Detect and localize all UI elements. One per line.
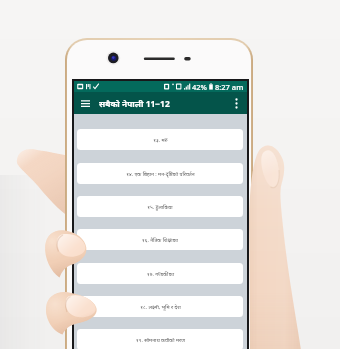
- button[interactable]: १८. लक्ष्मी, भूमि र देश: [77, 296, 243, 317]
- button[interactable]: १३. मरु: [77, 129, 243, 150]
- staticText: 42%: [192, 82, 207, 92]
- staticText: १५. हुलाकिया: [147, 203, 173, 210]
- button[interactable]: More options: [228, 95, 245, 112]
- staticText: 8:27 am: [215, 82, 244, 92]
- staticText: सबैको नेपाली 11−12: [99, 98, 170, 109]
- staticText: १९. सोमनाथ कवीको मरण: [136, 336, 185, 343]
- button[interactable]: १७. गण्डकीका: [77, 263, 243, 284]
- staticText: १८. लक्ष्मी, भूमि र देश: [140, 303, 181, 310]
- staticText: १४. एक बिहान : मन-दृष्टिको परिवर्तन: [126, 170, 195, 177]
- button[interactable]: Open navigation menu: [76, 94, 94, 112]
- button[interactable]: १६. नैतिक शिक्षाका: [77, 229, 243, 250]
- staticText: १३. मरु: [153, 136, 168, 143]
- button[interactable]: १५. हुलाकिया: [77, 196, 243, 217]
- button[interactable]: १९. सोमनाथ कवीको मरण: [77, 329, 243, 349]
- staticText: १६. नैतिक शिक्षाका: [142, 236, 178, 243]
- staticText: १७. गण्डकीका: [147, 270, 174, 277]
- button[interactable]: १४. एक बिहान : मन-दृष्टिको परिवर्तन: [77, 163, 243, 184]
